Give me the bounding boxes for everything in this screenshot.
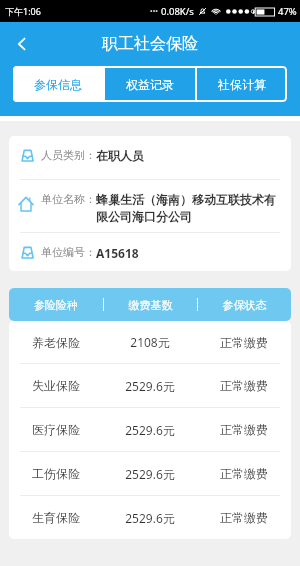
staticText: 单位编号： (41, 245, 96, 259)
button[interactable]: 工伤保险 (9, 452, 291, 495)
staticText: 社保计算 (218, 77, 266, 92)
staticText: 正常缴费 (197, 510, 291, 525)
button[interactable]: 失业保险 (9, 364, 291, 407)
button[interactable]: Back (0, 22, 44, 66)
staticText: 缴费基数 (104, 298, 197, 312)
staticText: 单位名称： (41, 192, 96, 206)
staticText: 医疗保险 (9, 422, 103, 437)
button[interactable]: 权益记录 (105, 66, 195, 102)
staticText: 失业保险 (9, 378, 103, 393)
staticText: 2529.6元 (103, 422, 197, 438)
staticText: 2529.6元 (103, 510, 197, 526)
staticText: 正常缴费 (197, 466, 291, 481)
staticText: 职工社会保险 (102, 34, 198, 54)
staticText: 工伤保险 (9, 466, 103, 481)
staticText: 参险险种 (9, 298, 103, 312)
button[interactable]: 人员类别： (9, 136, 291, 179)
staticText: 2529.6元 (103, 466, 197, 482)
button[interactable]: 单位编号： (9, 233, 291, 271)
staticText: 在职人员 (96, 148, 144, 163)
button[interactable]: 养老保险 (9, 321, 291, 363)
staticText: 人员类别： (41, 148, 96, 162)
staticText: 参保状态 (198, 298, 291, 312)
staticText: ••• (150, 7, 158, 17)
staticText: A15618 (96, 245, 139, 261)
button[interactable]: 生育保险 (9, 496, 291, 539)
staticText: 0.08K/s (161, 5, 194, 18)
staticText: 正常缴费 (197, 422, 291, 437)
staticText: 蜂巢生活（海南）移动互联技术有限公司海口分公司 (96, 192, 283, 224)
staticText: 养老保险 (9, 335, 103, 350)
staticText: 2108元 (103, 334, 197, 350)
staticText: 生育保险 (9, 510, 103, 525)
button[interactable]: 参保信息 (13, 66, 103, 102)
button[interactable]: 医疗保险 (9, 408, 291, 451)
staticText: 参保信息 (34, 77, 82, 92)
staticText: 正常缴费 (197, 335, 291, 350)
staticText: 47% (278, 5, 297, 18)
button[interactable]: 社保计算 (197, 66, 287, 102)
staticText: 2529.6元 (103, 378, 197, 394)
staticText: 正常缴费 (197, 378, 291, 393)
staticText: 权益记录 (126, 77, 174, 92)
staticText: 下午1:06 (5, 5, 41, 17)
button[interactable]: 单位名称： (9, 180, 291, 232)
